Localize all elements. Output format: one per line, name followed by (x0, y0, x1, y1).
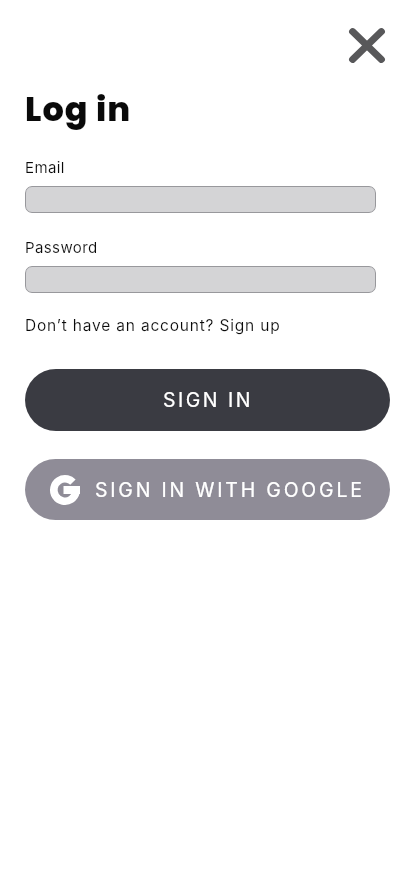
staticText: Log in (25, 86, 132, 133)
button[interactable] (349, 28, 385, 63)
button[interactable]: SIGN IN (25, 369, 390, 431)
staticText: Password (25, 238, 98, 256)
staticText: SIGN IN WITH GOOGLE (95, 478, 365, 502)
button[interactable] (25, 186, 376, 213)
button[interactable]: SIGN IN WITH GOOGLE (25, 459, 390, 520)
button[interactable]: Don’t have an account? Sign up (25, 316, 281, 335)
staticText: SIGN IN (163, 388, 253, 412)
button[interactable] (25, 266, 376, 293)
staticText: Email (25, 158, 65, 176)
